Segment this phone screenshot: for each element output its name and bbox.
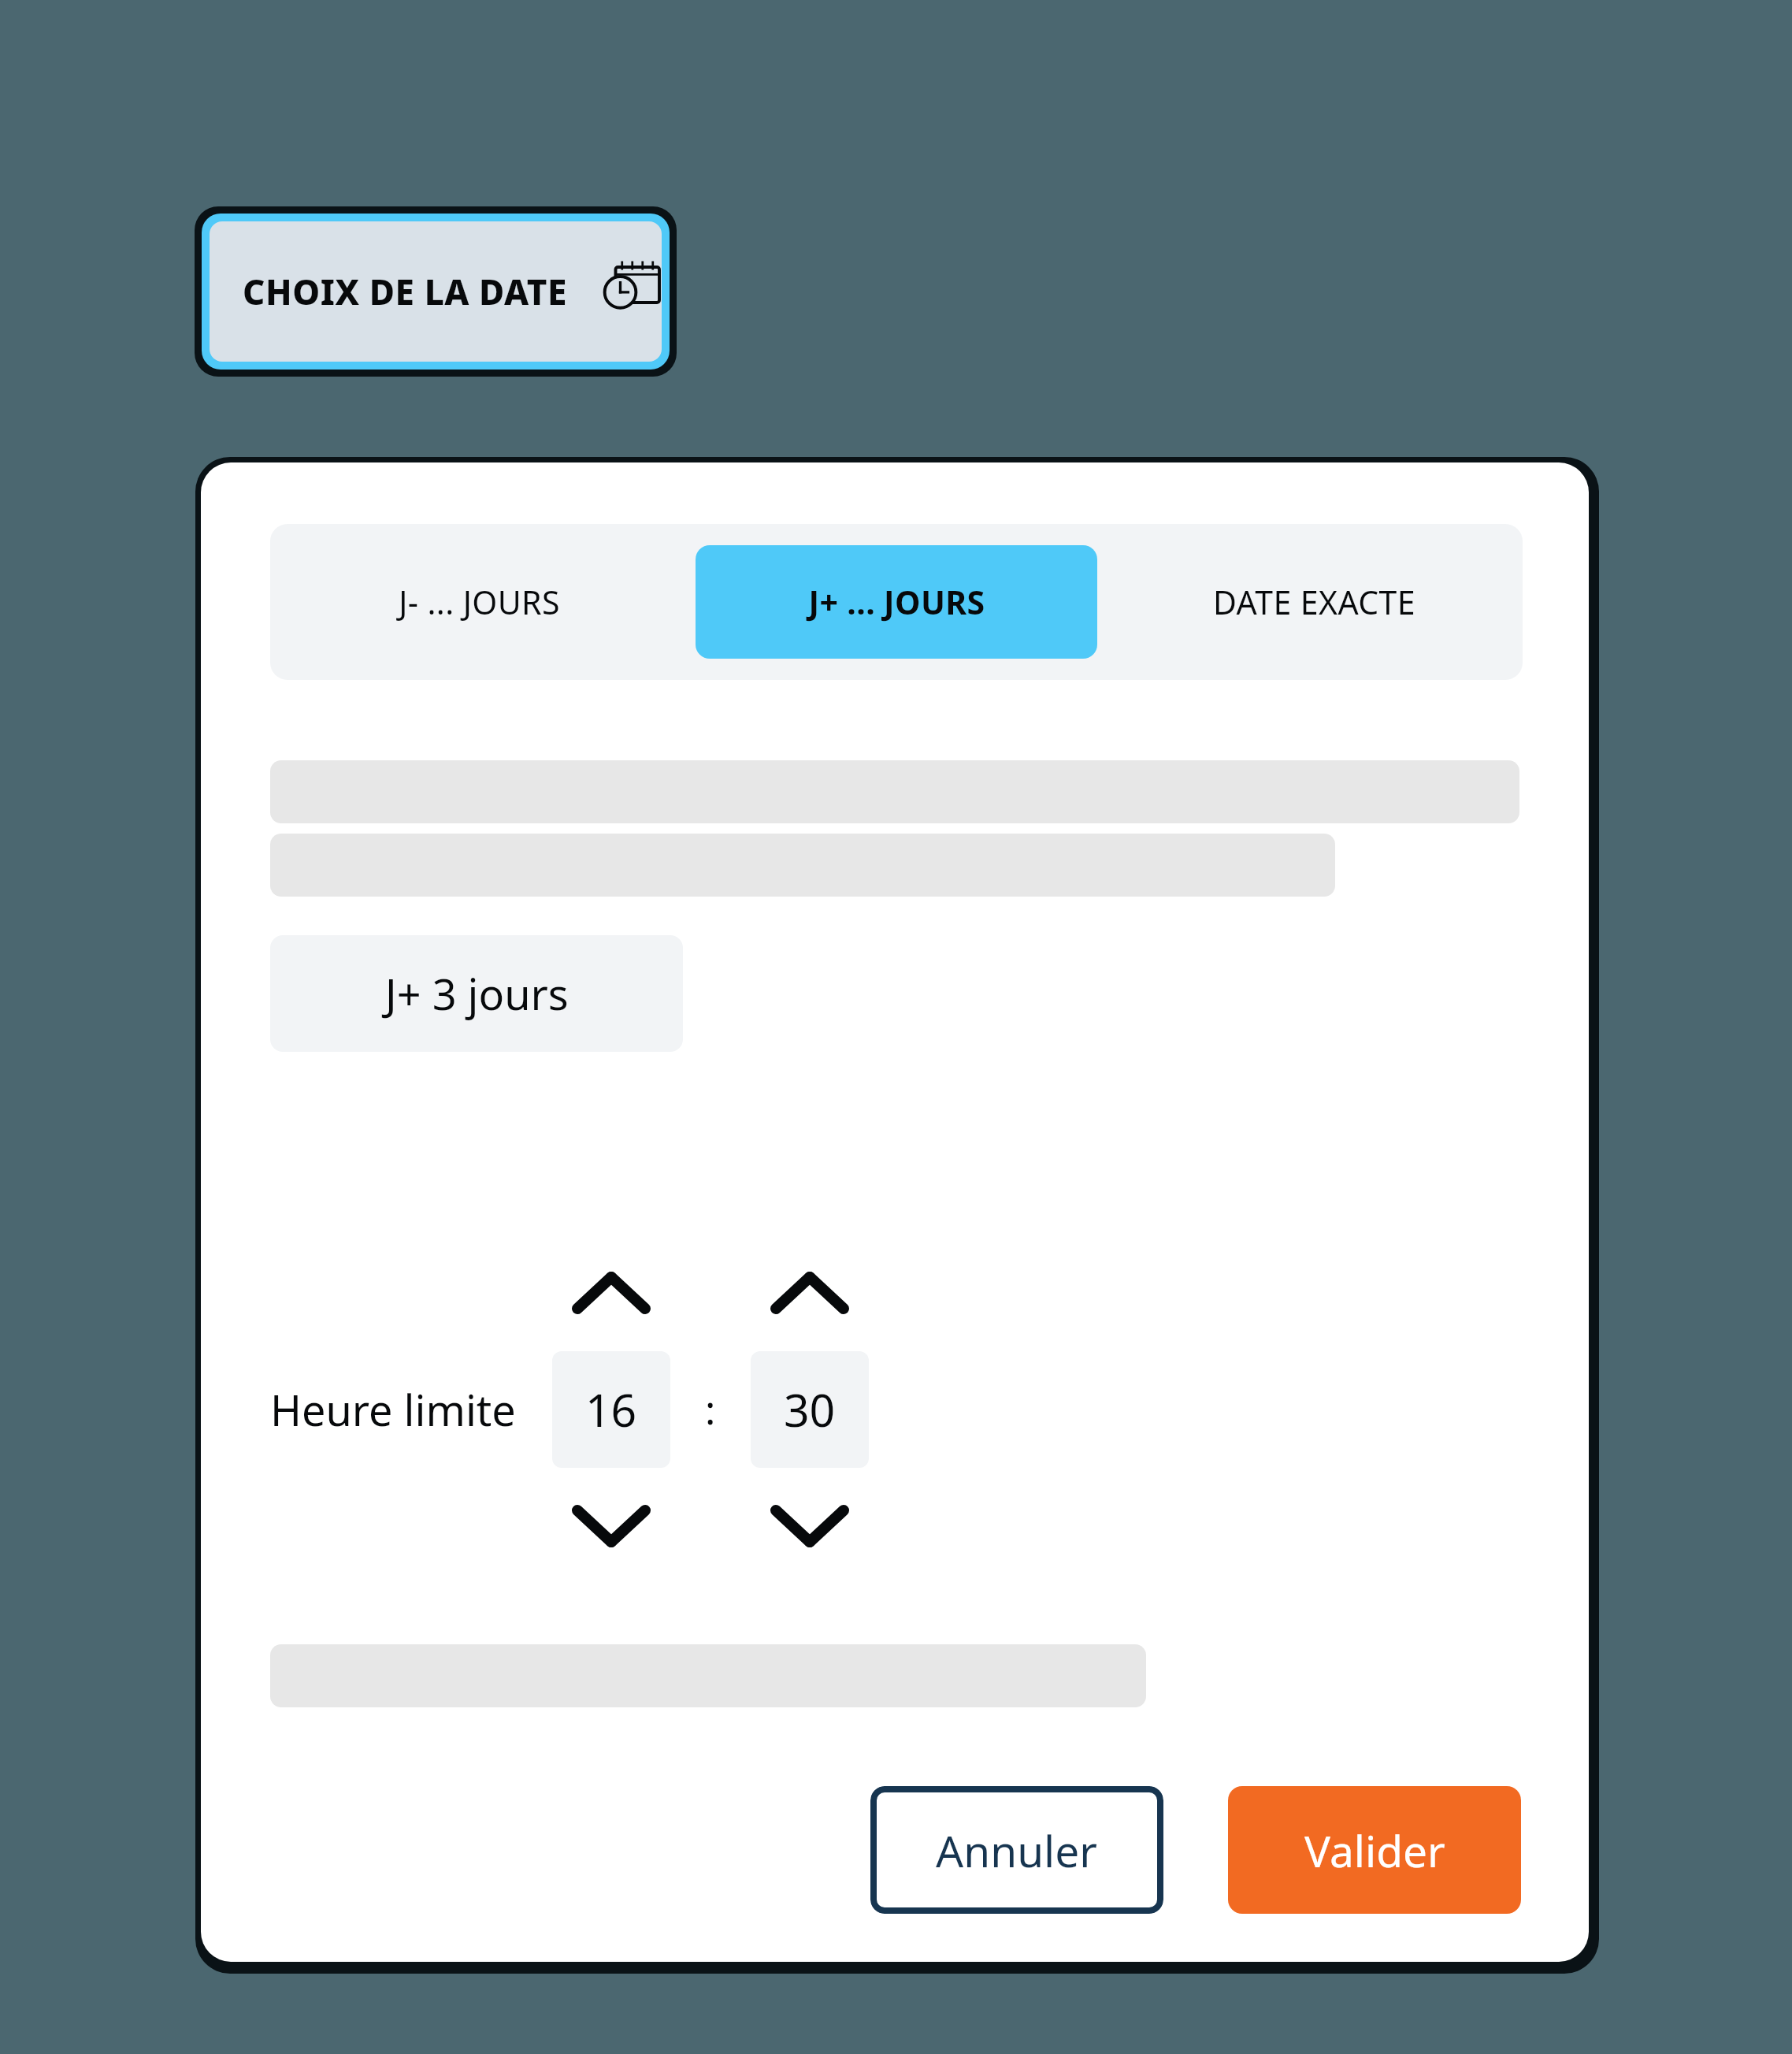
- staticText: Valider: [1304, 1821, 1445, 1880]
- button[interactable]: J+ ... JOURS: [696, 545, 1097, 659]
- staticText: 16: [585, 1379, 637, 1440]
- staticText: CHOIX DE LA DATE: [243, 268, 568, 315]
- staticText: Annuler: [936, 1821, 1098, 1880]
- button[interactable]: J- ... JOURS: [278, 545, 680, 659]
- staticText: J- ... JOURS: [399, 580, 560, 624]
- button[interactable]: Diminuer: [751, 1498, 869, 1554]
- button[interactable]: CHOIX DE LA DATE: [210, 221, 662, 362]
- button[interactable]: 16: [552, 1351, 670, 1468]
- button[interactable]: Valider: [1228, 1786, 1521, 1914]
- button[interactable]: DATE EXACTE: [1113, 545, 1515, 659]
- button[interactable]: Augmenter: [552, 1265, 670, 1321]
- staticText: J+ ... JOURS: [808, 580, 985, 624]
- staticText: 30: [784, 1379, 836, 1440]
- button[interactable]: Annuler: [870, 1786, 1163, 1914]
- staticText: Heure limite: [270, 1380, 516, 1439]
- staticText: J+ 3 jours: [385, 964, 569, 1023]
- staticText: :: [705, 1383, 716, 1436]
- button[interactable]: Augmenter: [751, 1265, 869, 1321]
- staticText: DATE EXACTE: [1213, 580, 1415, 624]
- button[interactable]: Diminuer: [552, 1498, 670, 1554]
- button[interactable]: J+ 3 jours: [270, 935, 683, 1052]
- button[interactable]: 30: [751, 1351, 869, 1468]
